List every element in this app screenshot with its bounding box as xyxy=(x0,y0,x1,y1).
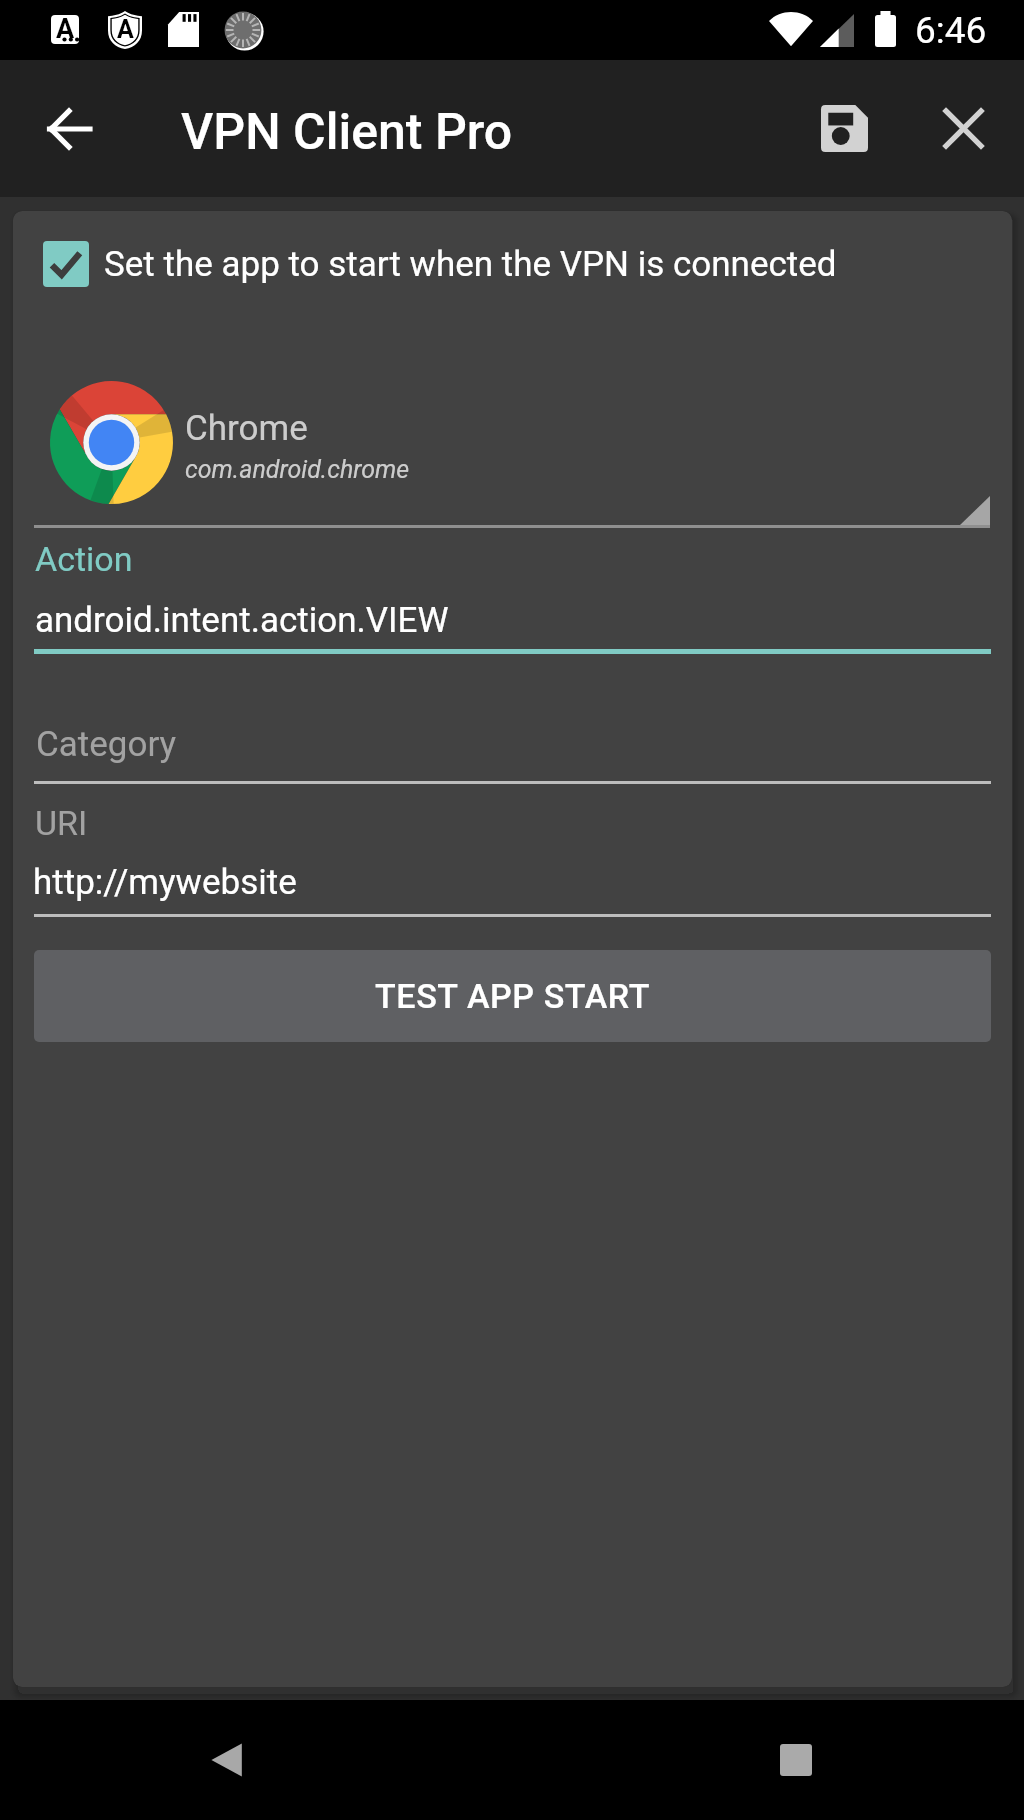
staticText: A xyxy=(117,15,134,44)
staticText: http://mywebsite xyxy=(33,862,297,903)
button[interactable]: Category xyxy=(34,724,991,789)
button[interactable]: Action xyxy=(34,539,991,664)
staticText: com.android.chrome xyxy=(185,455,410,484)
button[interactable]: Recent apps xyxy=(746,1710,846,1810)
staticText: Action xyxy=(35,539,133,579)
staticText: Set the app to start when the VPN is con… xyxy=(104,244,837,285)
staticText: Chrome xyxy=(185,408,308,449)
staticText: TEST APP START xyxy=(375,976,650,1016)
button[interactable]: Close xyxy=(916,81,1011,176)
button[interactable]: TEST APP START xyxy=(34,950,991,1042)
button[interactable]: Save xyxy=(797,81,892,176)
staticText: Category xyxy=(36,724,177,765)
staticText: 6:46 xyxy=(915,9,987,52)
button[interactable]: Set the app to start when the VPN is con… xyxy=(13,222,1012,306)
staticText: android.intent.action.VIEW xyxy=(35,600,449,641)
staticText: VPN Client Pro xyxy=(181,103,513,162)
button[interactable]: Select application xyxy=(34,370,990,530)
staticText: URI xyxy=(35,803,88,843)
staticText: A xyxy=(56,13,75,45)
button[interactable]: Back xyxy=(178,1710,278,1810)
button[interactable]: URI xyxy=(34,803,991,923)
button[interactable]: Navigate up xyxy=(26,86,112,172)
